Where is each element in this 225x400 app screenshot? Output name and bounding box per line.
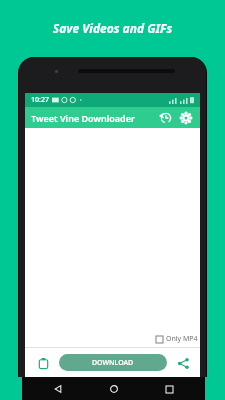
button[interactable]: Recent apps [161,381,177,397]
button[interactable]: Only MP4 [156,334,198,344]
button[interactable]: Settings [176,108,196,128]
button[interactable]: History [156,108,176,128]
button[interactable]: Home [106,381,122,397]
staticText: Save Videos and GIFs [0,20,225,36]
button[interactable]: Paste from clipboard [33,353,53,373]
staticText: DOWNLOAD [92,358,134,368]
staticText: Only MP4 [166,334,198,344]
staticText: 10:27 [31,95,49,105]
button[interactable]: DOWNLOAD [59,354,167,371]
button[interactable]: Share [173,353,193,373]
button[interactable]: Back [50,381,66,397]
staticText: Tweet Vine Downloader [31,112,135,124]
